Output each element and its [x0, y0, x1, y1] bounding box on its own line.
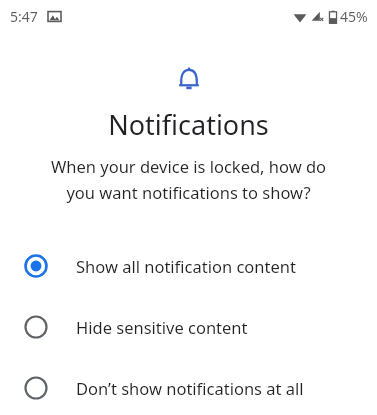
staticText: Hide sensitive content — [76, 316, 248, 338]
staticText: 5:47 — [10, 7, 38, 26]
staticText: When your device is locked, how do you w… — [18, 155, 359, 204]
other: Notifications — [176, 66, 202, 92]
staticText: Don’t show notifications at all — [76, 377, 304, 399]
button[interactable]: Don’t show notifications at all — [0, 368, 377, 408]
button[interactable]: Show all notification content — [0, 246, 377, 286]
staticText: Notifications — [0, 106, 377, 143]
staticText: Show all notification content — [76, 255, 296, 277]
staticText: 45% — [340, 7, 368, 26]
button[interactable]: Hide sensitive content — [0, 307, 377, 347]
